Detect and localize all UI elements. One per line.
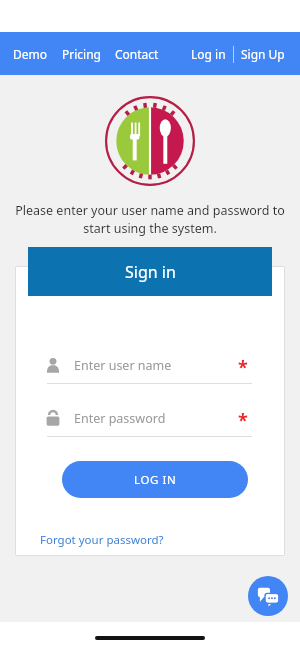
button[interactable]: Contact [108, 40, 166, 68]
button[interactable]: Password [44, 399, 256, 437]
button[interactable]: Pricing [55, 40, 108, 68]
staticText: Forgot your password? [40, 532, 164, 548]
staticText: Contact [115, 46, 159, 62]
staticText: Enter password [74, 410, 166, 427]
button[interactable]: LOG IN [62, 461, 248, 498]
staticText: Log in [191, 46, 226, 62]
staticText: Sign in [125, 261, 176, 283]
staticText: * [238, 408, 248, 433]
other: Password [44, 409, 62, 427]
staticText: Enter user name [74, 357, 172, 374]
button[interactable]: Forgot your password? [37, 529, 167, 551]
staticText: LOG IN [134, 472, 177, 488]
button[interactable]: Chat [248, 576, 288, 616]
staticText: Pricing [62, 46, 101, 62]
staticText: Please enter your user name and password… [14, 202, 286, 237]
button[interactable]: Demo [6, 40, 55, 68]
staticText: Demo [13, 46, 48, 62]
button[interactable]: User [44, 346, 256, 384]
button[interactable]: Log in [184, 40, 233, 68]
button[interactable]: Sign Up [234, 40, 292, 68]
staticText: * [238, 355, 248, 380]
staticText: Sign Up [241, 46, 285, 62]
other: User [44, 356, 62, 374]
button[interactable]: Sign in [28, 247, 272, 296]
